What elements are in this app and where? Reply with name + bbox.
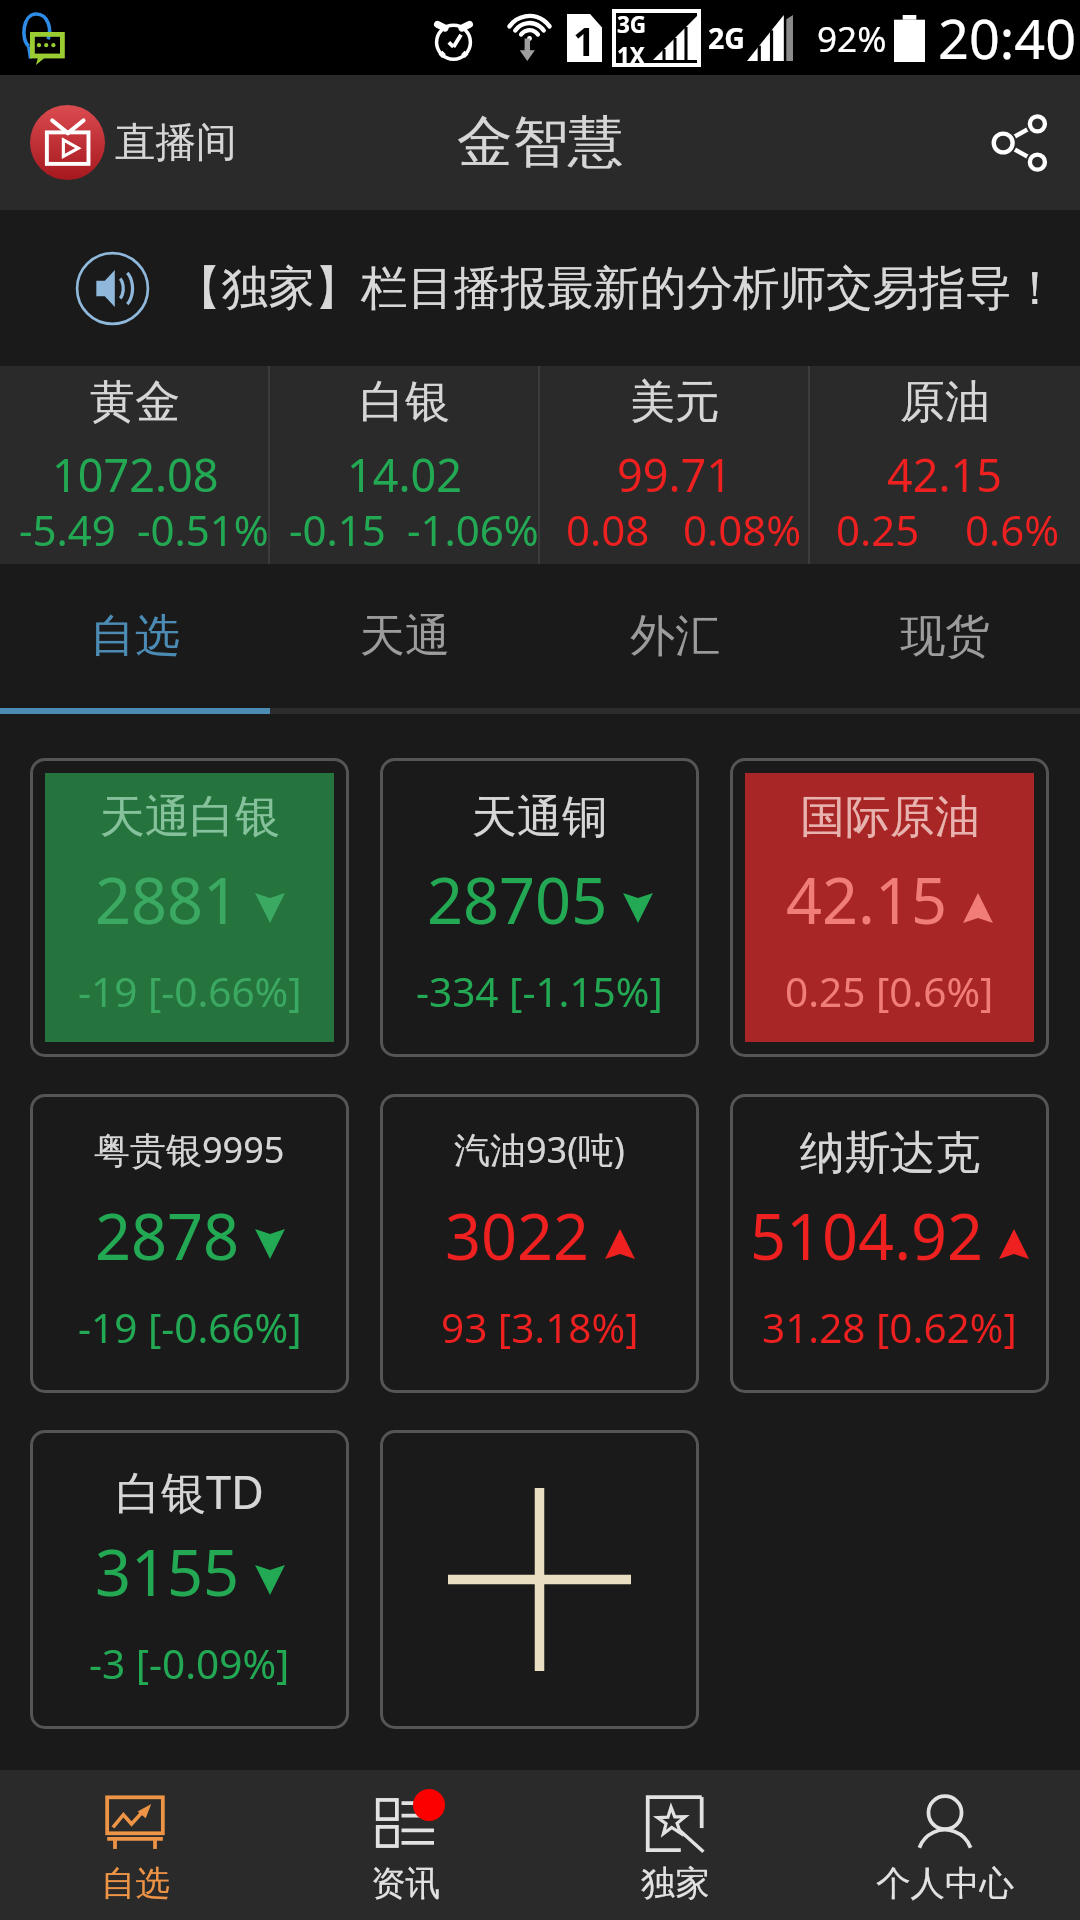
staticText: 直播间	[115, 117, 237, 168]
staticText: 1072.08	[52, 444, 219, 505]
button[interactable]: 白银TD	[45, 1445, 334, 1714]
staticText: -3 [-0.09%]	[89, 1636, 290, 1691]
staticText: 外汇	[630, 608, 720, 665]
button[interactable]: 自选	[0, 564, 270, 708]
staticText: 3022	[445, 1193, 590, 1279]
button[interactable]: Add	[380, 1430, 699, 1729]
staticText: 白银TD	[116, 1461, 264, 1522]
staticText: 2881	[95, 857, 240, 943]
button[interactable]: 粤贵银9995	[45, 1109, 334, 1378]
staticText: -0.51%	[137, 501, 269, 558]
staticText: 5104.92	[750, 1193, 984, 1279]
staticText: 92%	[817, 14, 887, 62]
staticText: 3G	[617, 9, 647, 40]
staticText: 42.15	[786, 857, 948, 943]
staticText: 金智慧	[457, 108, 624, 178]
staticText: 93 [3.18%]	[441, 1300, 639, 1355]
staticText: -5.49	[19, 501, 116, 558]
staticText: 天通白银	[100, 789, 280, 846]
staticText: 2G	[708, 19, 745, 58]
button[interactable]: 个人中心	[810, 1770, 1080, 1920]
staticText: -1.06%	[407, 501, 539, 558]
button[interactable]: Share	[960, 75, 1080, 210]
button[interactable]: 资讯	[270, 1770, 540, 1920]
staticText: 独家	[641, 1862, 710, 1905]
button[interactable]: 天通白银	[45, 773, 334, 1042]
button[interactable]: 汽油93(吨)	[395, 1109, 684, 1378]
staticText: 0.25 [0.6%]	[785, 964, 994, 1019]
button[interactable]: 自选	[0, 1770, 270, 1920]
staticText: -19 [-0.66%]	[78, 964, 302, 1019]
staticText: 31.28 [0.62%]	[762, 1300, 1017, 1355]
staticText: 天通	[360, 608, 450, 665]
staticText: 0.25	[836, 501, 920, 558]
staticText: 0.08%	[683, 501, 802, 558]
staticText: 42.15	[887, 444, 1003, 505]
staticText: 原油	[900, 374, 990, 431]
staticText: 1X	[617, 40, 645, 67]
staticText: 资讯	[371, 1862, 440, 1905]
staticText: -334 [-1.15%]	[416, 964, 663, 1019]
button[interactable]: 现货	[810, 564, 1080, 708]
staticText: 个人中心	[876, 1862, 1014, 1905]
staticText: 0.6%	[965, 501, 1060, 558]
staticText: 白银	[360, 374, 450, 431]
staticText: 1	[573, 14, 596, 62]
button[interactable]: 天通铜	[395, 773, 684, 1042]
staticText: -0.15	[289, 501, 386, 558]
staticText: 天通铜	[472, 789, 607, 846]
button[interactable]: 独家	[540, 1770, 810, 1920]
staticText: -19 [-0.66%]	[78, 1300, 302, 1355]
staticText: 黄金	[90, 374, 180, 431]
staticText: 国际原油	[800, 789, 980, 846]
staticText: 14.02	[347, 444, 463, 505]
staticText: 20:40	[938, 1, 1077, 75]
button[interactable]: 美元	[540, 366, 810, 564]
staticText: 粤贵银9995	[94, 1125, 285, 1174]
button[interactable]: 天通	[270, 564, 540, 708]
staticText: 纳斯达克	[800, 1125, 980, 1182]
button[interactable]: 原油	[810, 366, 1080, 564]
staticText: 2878	[95, 1193, 240, 1279]
staticText: 28705	[427, 857, 608, 943]
staticText: 现货	[900, 608, 990, 665]
staticText: 汽油93(吨)	[454, 1125, 625, 1174]
button[interactable]: 外汇	[540, 564, 810, 708]
staticText: 【独家】栏目播报最新的分析师交易指导！	[175, 259, 1059, 318]
button[interactable]: 直播间	[0, 75, 237, 210]
button[interactable]: 【独家】栏目播报最新的分析师交易指导！	[0, 210, 1080, 366]
staticText: 自选	[101, 1862, 170, 1905]
button[interactable]: 国际原油	[745, 773, 1034, 1042]
button[interactable]: 黄金	[0, 366, 270, 564]
staticText: 美元	[630, 374, 720, 431]
staticText: 3155	[95, 1529, 240, 1615]
button[interactable]: 白银	[270, 366, 540, 564]
staticText: 自选	[90, 608, 180, 665]
staticText: 99.71	[617, 444, 733, 505]
staticText: 0.08	[566, 501, 650, 558]
button[interactable]: 纳斯达克	[745, 1109, 1034, 1378]
